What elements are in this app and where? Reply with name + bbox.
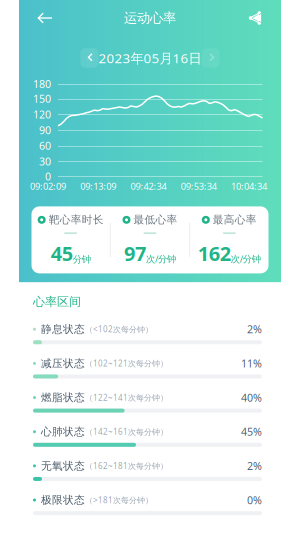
staticText: 90 <box>39 123 51 137</box>
staticText: 2% <box>247 322 262 336</box>
staticText: 45% <box>241 425 262 439</box>
staticText: 30 <box>39 154 51 168</box>
staticText: （142~161次每分钟） <box>85 426 168 437</box>
staticText: 运动心率 <box>124 10 176 26</box>
staticText: 45 <box>51 240 73 267</box>
staticText: （162~181次每分钟） <box>85 461 168 471</box>
button[interactable]: Share <box>238 1 272 35</box>
staticText: 11% <box>241 356 262 370</box>
staticText: 心率区间 <box>33 294 81 309</box>
staticText: 0 <box>45 169 51 183</box>
staticText: 分钟 <box>73 254 91 265</box>
staticText: 心肺状态 <box>41 425 85 438</box>
staticText: 2% <box>247 459 262 473</box>
button[interactable]: Back <box>28 1 62 35</box>
staticText: 极限状态 <box>41 493 85 507</box>
staticText: 靶心率时长 <box>49 213 104 226</box>
staticText: （122~141次每分钟） <box>85 392 168 403</box>
staticText: 0% <box>247 493 262 507</box>
staticText: 09:53:34 <box>181 180 217 192</box>
staticText: 静息状态 <box>41 323 85 336</box>
staticText: （<102次每分钟） <box>85 324 153 334</box>
button[interactable]: Next day <box>201 48 219 68</box>
staticText: 2023年05月16日 <box>98 49 201 67</box>
button[interactable]: Previous day <box>80 48 98 68</box>
staticText: 最低心率 <box>133 213 177 226</box>
staticText: 10:04:34 <box>231 180 267 192</box>
staticText: 97 <box>124 240 146 267</box>
staticText: 162 <box>198 240 231 267</box>
staticText: 120 <box>33 107 51 121</box>
staticText: 次/分钟 <box>231 253 261 265</box>
staticText: （>181次每分钟） <box>85 495 153 505</box>
staticText: 09:42:34 <box>130 180 166 192</box>
staticText: 无氧状态 <box>41 459 85 472</box>
staticText: 180 <box>33 77 51 91</box>
staticText: 60 <box>39 139 51 153</box>
staticText: 燃脂状态 <box>41 391 85 404</box>
staticText: 09:13:09 <box>80 180 116 192</box>
staticText: 40% <box>241 390 262 405</box>
staticText: 次/分钟 <box>146 253 176 265</box>
staticText: 减压状态 <box>41 357 85 370</box>
staticText: （102~121次每分钟） <box>85 358 168 369</box>
staticText: 09:02:09 <box>30 180 66 192</box>
staticText: 150 <box>33 92 51 106</box>
staticText: 最高心率 <box>213 213 257 226</box>
